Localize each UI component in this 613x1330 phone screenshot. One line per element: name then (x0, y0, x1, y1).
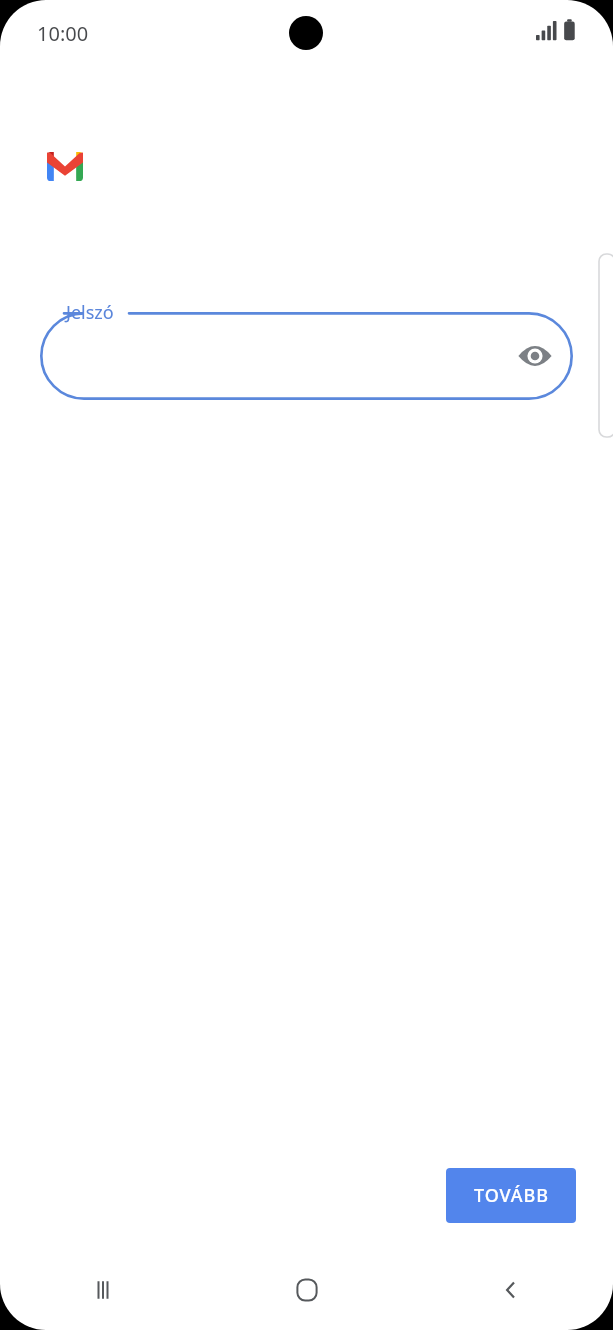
button[interactable]: TOVÁBB (446, 1168, 576, 1223)
staticText: 10:00 (37, 20, 89, 47)
button[interactable]: Vissza (409, 1250, 613, 1330)
button[interactable]: Jelszó (40, 312, 573, 400)
button[interactable]: Jelszó megjelenítése (508, 329, 562, 383)
staticText: TOVÁBB (474, 1183, 549, 1208)
button[interactable]: Legutóbbiak (0, 1250, 205, 1330)
button[interactable]: Kezdőképernyő (205, 1250, 409, 1330)
staticText: Jelszó (66, 300, 114, 325)
